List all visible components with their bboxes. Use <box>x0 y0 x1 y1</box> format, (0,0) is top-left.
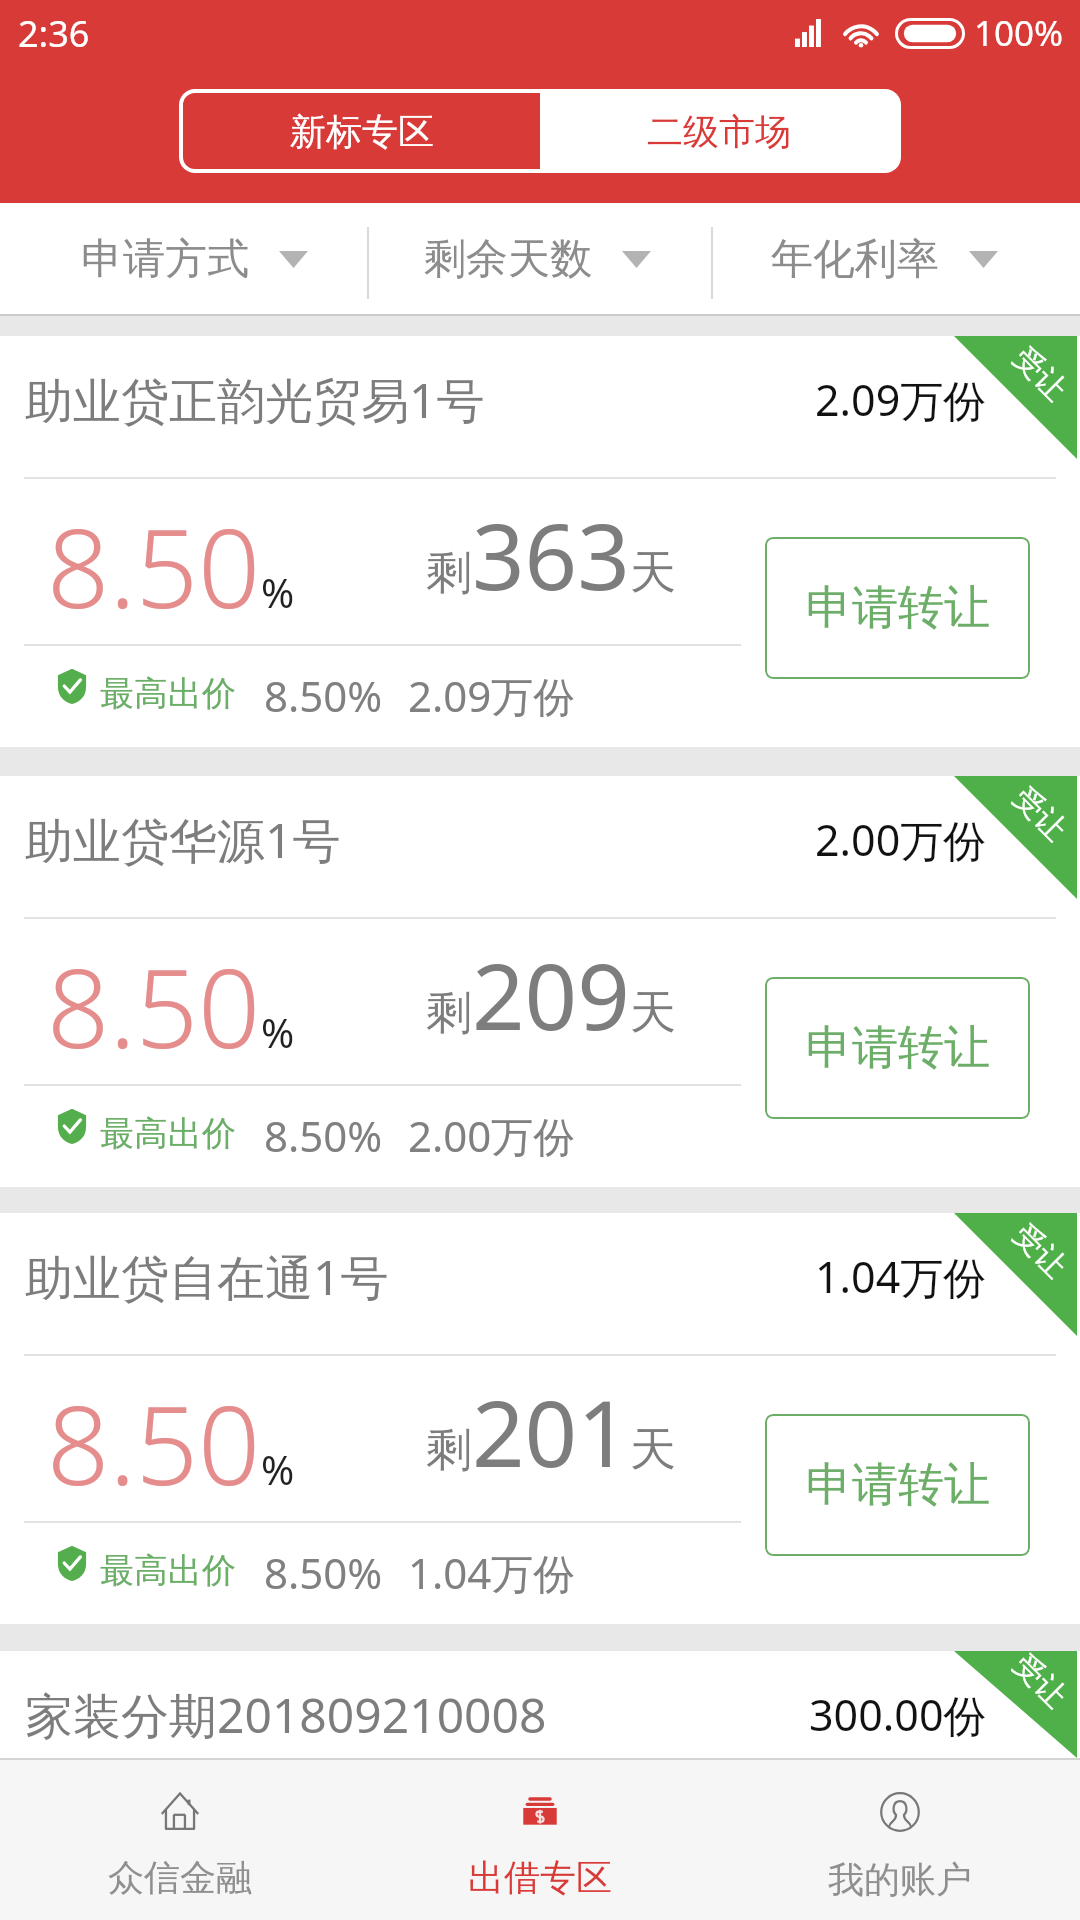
button[interactable]: 众信金融 <box>20 1758 340 1920</box>
staticText: 2.00万份 <box>815 810 987 869</box>
staticText: 1.04万份 <box>815 1247 987 1306</box>
other: 受让 <box>954 1651 1077 1758</box>
button[interactable]: 剩余天数 <box>404 203 664 316</box>
staticText: 二级市场 <box>647 109 791 154</box>
staticText: % <box>261 565 295 619</box>
staticText: % <box>261 1005 295 1059</box>
button[interactable]: 申请转让 <box>765 537 1030 679</box>
button[interactable]: 助业贷华源1号 <box>0 776 1080 1187</box>
button[interactable]: 家装分期201809210008 <box>0 1651 1080 1758</box>
staticText: 天 <box>630 984 676 1042</box>
staticText: 申请转让 <box>806 1019 990 1077</box>
button[interactable]: 年化利率 <box>751 203 1011 316</box>
staticText: 2.09万份 <box>408 667 576 724</box>
staticText: 300.00份 <box>809 1685 987 1744</box>
staticText: 我的账户 <box>828 1857 972 1902</box>
staticText: 家装分期201809210008 <box>25 1682 547 1748</box>
staticText: 363 <box>472 492 630 617</box>
staticText: 剩余天数 <box>424 233 592 286</box>
button[interactable]: 助业贷自在通1号 <box>0 1213 1080 1624</box>
staticText: 2:36 <box>18 9 90 58</box>
other: Account <box>880 1792 920 1832</box>
button[interactable]: 二级市场 <box>540 93 897 169</box>
staticText: 年化利率 <box>771 233 939 286</box>
button[interactable]: 新标专区 <box>183 93 540 169</box>
button[interactable]: 助业贷正韵光贸易1号 <box>0 336 1080 747</box>
staticText: 出借专区 <box>468 1855 612 1900</box>
staticText: 申请转让 <box>806 579 990 637</box>
staticText: 100% <box>974 9 1064 57</box>
button[interactable]: 申请转让 <box>765 977 1030 1119</box>
staticText: 助业贷正韵光贸易1号 <box>25 367 485 433</box>
staticText: 助业贷华源1号 <box>25 807 341 873</box>
staticText: 剩 <box>426 984 472 1042</box>
button[interactable]: 申请转让 <box>765 1414 1030 1556</box>
staticText: 申请方式 <box>81 233 249 286</box>
staticText: 8.50% <box>264 667 383 724</box>
staticText: 1.04万份 <box>408 1544 576 1601</box>
button[interactable]: Account <box>740 1758 1060 1920</box>
staticText: 剩 <box>426 544 472 602</box>
button[interactable]: 申请方式 <box>61 203 321 316</box>
other: 受让 <box>954 1213 1077 1336</box>
staticText: 天 <box>630 1421 676 1479</box>
staticText: 众信金融 <box>108 1855 252 1900</box>
staticText: 201 <box>472 1369 630 1494</box>
staticText: % <box>261 1442 295 1496</box>
other: Lending <box>521 1792 559 1830</box>
staticText: 剩 <box>426 1421 472 1479</box>
staticText: 8.50% <box>264 1107 383 1164</box>
staticText: 最高出价 <box>100 1112 236 1155</box>
staticText: 8.50 <box>47 491 261 639</box>
staticText: 2.09万份 <box>815 370 987 429</box>
staticText: 助业贷自在通1号 <box>25 1244 389 1310</box>
staticText: 受让 <box>1005 1646 1075 1716</box>
staticText: 新标专区 <box>290 109 434 154</box>
staticText: 8.50 <box>47 1368 261 1516</box>
other: 受让 <box>954 776 1077 899</box>
staticText: 申请转让 <box>806 1456 990 1514</box>
staticText: 受让 <box>1005 779 1075 849</box>
staticText: 最高出价 <box>100 1549 236 1592</box>
staticText: 最高出价 <box>100 672 236 715</box>
other: 受让 <box>954 336 1077 459</box>
staticText: 2.00万份 <box>408 1107 576 1164</box>
staticText: 8.50% <box>264 1544 383 1601</box>
staticText: 8.50 <box>47 931 261 1079</box>
staticText: 209 <box>472 932 630 1057</box>
staticText: 受让 <box>1005 1216 1075 1286</box>
button[interactable]: Lending <box>380 1758 700 1920</box>
staticText: 天 <box>630 544 676 602</box>
staticText: 受让 <box>1005 339 1075 409</box>
